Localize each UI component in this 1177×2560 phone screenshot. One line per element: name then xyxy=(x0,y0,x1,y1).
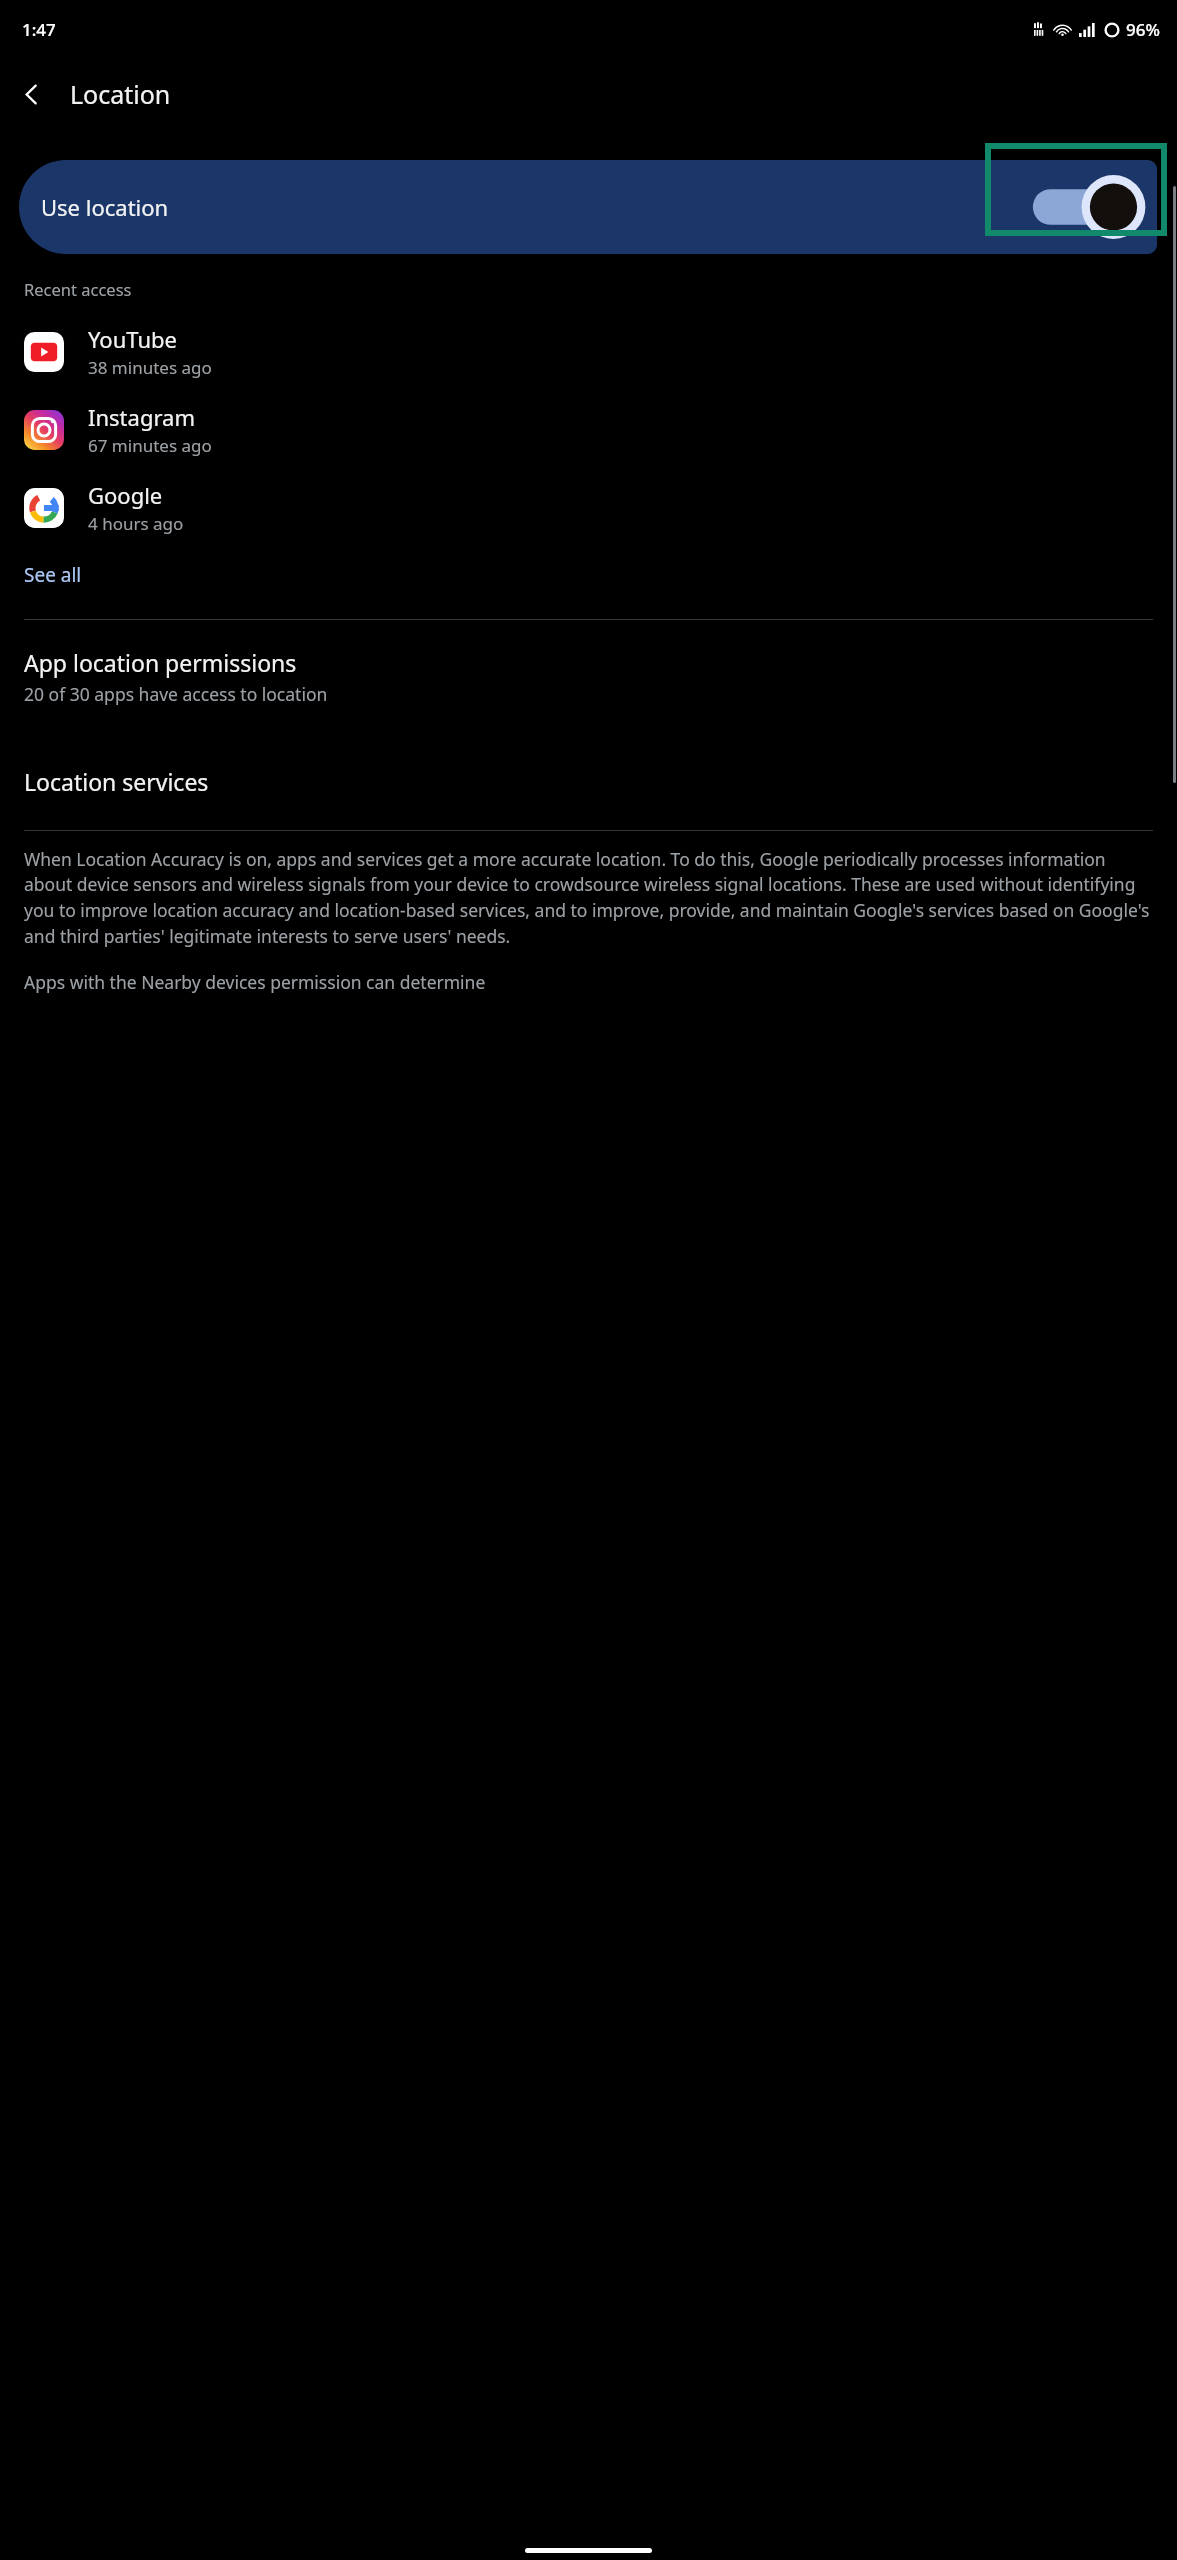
staticText: Location xyxy=(70,77,171,111)
staticText: Location services xyxy=(24,766,209,797)
staticText: Use location xyxy=(41,192,1029,222)
button[interactable]: Back xyxy=(0,63,62,125)
staticText: Instagram xyxy=(88,402,195,432)
button[interactable]: Location services xyxy=(0,736,1177,830)
staticText: 1:47 xyxy=(22,18,56,41)
staticText: 4 hours ago xyxy=(88,512,184,535)
button[interactable]: Use location xyxy=(19,160,1157,254)
button[interactable]: Google xyxy=(0,474,1177,541)
staticText: 67 minutes ago xyxy=(88,434,212,457)
button[interactable]: YouTube xyxy=(0,318,1177,385)
button[interactable]: Instagram xyxy=(0,396,1177,463)
staticText: Google xyxy=(88,480,163,510)
staticText: 38 minutes ago xyxy=(88,356,212,379)
staticText: Recent access xyxy=(24,278,132,300)
button[interactable]: App location permissions xyxy=(0,620,1177,736)
staticText: See all xyxy=(24,562,82,588)
staticText: 96% xyxy=(1126,18,1160,41)
staticText: App location permissions xyxy=(24,647,297,678)
staticText: Apps with the Nearby devices permission … xyxy=(24,970,486,994)
staticText: When Location Accuracy is on, apps and s… xyxy=(24,847,1153,949)
button[interactable]: See all xyxy=(0,554,1177,596)
staticText: 20 of 30 apps have access to location xyxy=(24,682,328,706)
staticText: YouTube xyxy=(88,324,177,354)
